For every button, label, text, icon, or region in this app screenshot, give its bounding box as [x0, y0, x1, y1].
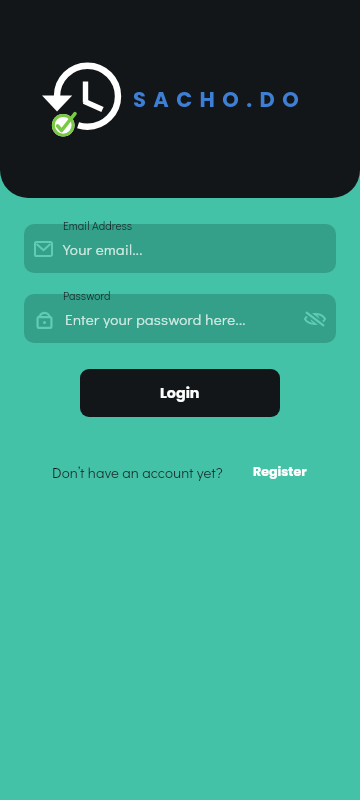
button[interactable]: Enter your password here... [24, 294, 336, 343]
staticText: SACHO.DO [133, 85, 307, 114]
button[interactable]: Show password [304, 309, 326, 329]
staticText: Email Address [63, 218, 133, 233]
staticText: Enter your password here... [65, 309, 246, 329]
staticText: Password [63, 288, 111, 303]
staticText: Your email... [63, 239, 143, 259]
staticText: Login [160, 383, 200, 403]
button[interactable]: Your email... [24, 224, 336, 273]
button[interactable]: Register [251, 461, 309, 483]
staticText: Don’t have an account yet? [52, 462, 223, 482]
button[interactable]: Login [80, 369, 280, 417]
staticText: Register [253, 463, 307, 481]
